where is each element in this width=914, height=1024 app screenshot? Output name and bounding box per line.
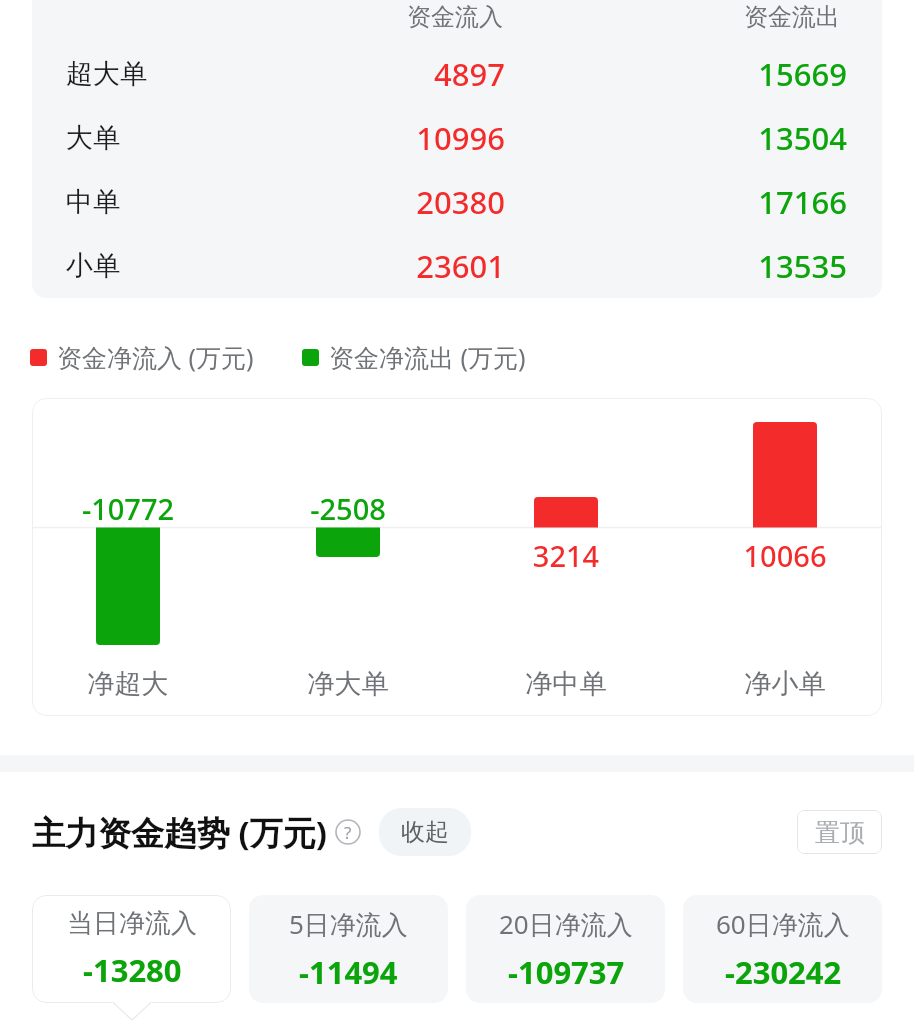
staticText: 13535 [647, 245, 847, 287]
button[interactable]: 帮助 [335, 819, 361, 845]
staticText: 15669 [647, 53, 847, 95]
staticText: 当日净流入 [67, 907, 197, 940]
staticText: 5日净流入 [289, 906, 408, 942]
button[interactable]: 20日净流入 [466, 895, 665, 1003]
staticText: 资金净流出 (万元) [329, 340, 526, 374]
button[interactable]: 收起 [379, 808, 471, 856]
staticText: 10996 [305, 117, 505, 159]
staticText: 净小单 [685, 667, 885, 701]
staticText: 17166 [647, 181, 847, 223]
staticText: -2508 [248, 489, 448, 528]
staticText: 60日净流入 [716, 906, 850, 942]
staticText: -230242 [725, 951, 842, 993]
button[interactable]: 置顶 [797, 810, 882, 854]
staticText: 10066 [685, 536, 885, 575]
staticText: -11494 [299, 951, 398, 993]
staticText: 置顶 [815, 817, 865, 848]
button[interactable]: 当日净流入 [32, 895, 231, 1003]
staticText: 3214 [466, 536, 666, 575]
staticText: -109737 [508, 951, 625, 993]
staticText: 主力资金趋势 (万元) [32, 810, 327, 855]
staticText: -10772 [28, 489, 228, 528]
staticText: 4897 [305, 53, 505, 95]
staticText: 资金流出 [692, 2, 892, 32]
staticText: 净中单 [466, 667, 666, 701]
staticText: 净超大 [28, 667, 228, 701]
staticText: 净大单 [248, 667, 448, 701]
staticText: 资金净流入 (万元) [57, 340, 254, 374]
staticText: 收起 [401, 817, 449, 847]
staticText: 20日净流入 [499, 906, 633, 942]
staticText: ? [344, 821, 352, 844]
staticText: 23601 [305, 245, 505, 287]
staticText: -13280 [83, 949, 182, 991]
staticText: 资金流入 [355, 2, 555, 32]
button[interactable]: 5日净流入 [249, 895, 448, 1003]
button[interactable]: 60日净流入 [683, 895, 882, 1003]
staticText: 中单 [66, 185, 120, 219]
staticText: 超大单 [66, 57, 147, 91]
staticText: 大单 [66, 121, 120, 155]
staticText: 13504 [647, 117, 847, 159]
staticText: 20380 [305, 181, 505, 223]
staticText: 小单 [66, 249, 120, 283]
